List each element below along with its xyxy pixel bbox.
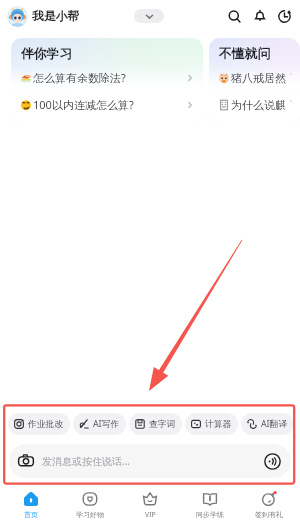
button[interactable]: 伴你学习	[11, 38, 203, 126]
button[interactable]: 签到有礼	[240, 488, 298, 526]
button[interactable]: 怎么算有余数除法?	[20, 70, 194, 85]
staticText: 100以内连减怎么算?	[33, 97, 134, 112]
button[interactable]: AI写作	[73, 413, 126, 435]
staticText: 计算器	[205, 419, 232, 430]
button[interactable]: Notifications	[251, 7, 269, 25]
staticText: 作业批改	[28, 419, 64, 430]
staticText: VIP	[145, 510, 156, 520]
button[interactable]: History	[275, 7, 293, 25]
staticText: 猪八戒居然比	[231, 71, 291, 85]
button[interactable]: Expand	[134, 9, 164, 23]
button[interactable]: 为什么说麒麟是	[218, 97, 291, 112]
button[interactable]: AI翻译	[241, 413, 294, 435]
button[interactable]: 100以内连减怎么算?	[20, 97, 194, 112]
button[interactable]: 作业批改	[8, 413, 70, 435]
staticText: 为什么说麒麟是	[231, 98, 291, 112]
button[interactable]: User avatar	[7, 6, 28, 27]
staticText: AI写作	[93, 418, 120, 430]
staticText: AI翻译	[261, 418, 288, 430]
button[interactable]: 首页	[2, 488, 60, 526]
button[interactable]: 不懂就问	[209, 38, 300, 126]
button[interactable]: 查字词	[129, 413, 182, 435]
button[interactable]: VIP	[121, 488, 179, 526]
staticText: 同步学练	[196, 510, 224, 519]
button[interactable]: 发消息或按住说话...	[9, 444, 291, 478]
button[interactable]: 猪八戒居然比	[218, 70, 291, 85]
button[interactable]: Search	[225, 7, 243, 25]
staticText: 首页	[24, 510, 38, 519]
button[interactable]: Voice input	[263, 452, 282, 471]
staticText: 发消息或按住说话...	[42, 454, 131, 468]
staticText: 查字词	[149, 419, 176, 430]
button[interactable]: 同步学练	[181, 488, 239, 526]
button[interactable]: 计算器	[185, 413, 238, 435]
staticText: 怎么算有余数除法?	[33, 70, 126, 85]
staticText: 伴你学习	[21, 46, 73, 62]
staticText: 我是小帮	[32, 9, 80, 24]
staticText: 学习好物	[76, 510, 104, 519]
staticText: 签到有礼	[255, 510, 283, 519]
staticText: 不懂就问	[219, 46, 271, 62]
button[interactable]: 学习好物	[61, 488, 119, 526]
